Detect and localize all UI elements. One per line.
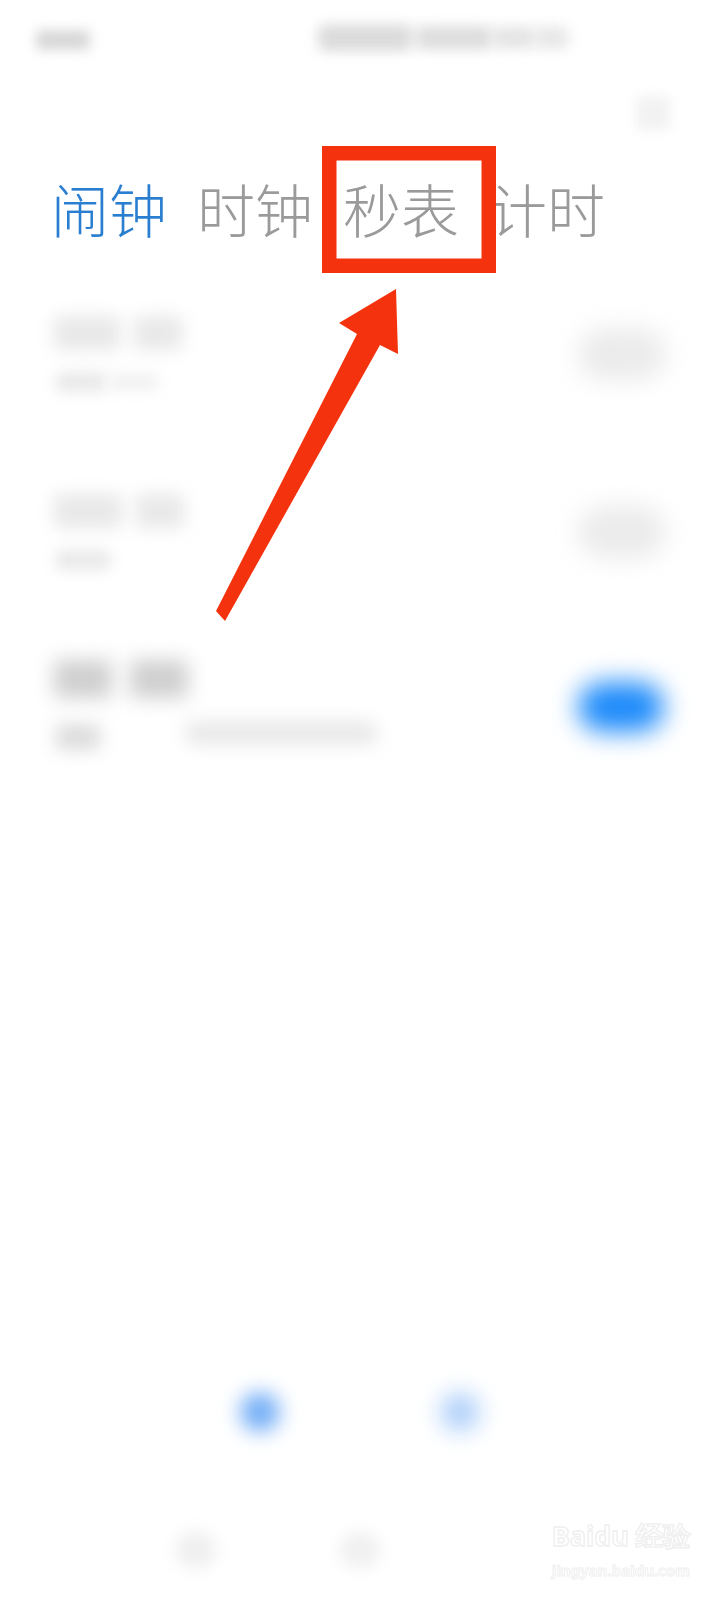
button[interactable]: More options	[622, 82, 684, 144]
button[interactable]: Delete alarm	[412, 1364, 508, 1460]
button[interactable]	[0, 300, 720, 460]
staticText: 时钟	[197, 166, 314, 250]
button[interactable]: 闹钟	[44, 166, 174, 250]
button[interactable]: 秒表	[336, 166, 466, 250]
staticText: 秒表	[343, 166, 460, 250]
button[interactable]	[0, 478, 720, 638]
button[interactable]	[0, 652, 720, 812]
staticText: 计时	[489, 166, 606, 250]
staticText: 闹钟	[51, 166, 168, 250]
staticText: jingyan.baidu.com	[552, 1560, 690, 1580]
button[interactable]: 计时	[482, 166, 612, 250]
button[interactable]: 时钟	[190, 166, 320, 250]
staticText: Baidu 经验	[552, 1517, 690, 1554]
button[interactable]: Add alarm	[212, 1364, 308, 1460]
